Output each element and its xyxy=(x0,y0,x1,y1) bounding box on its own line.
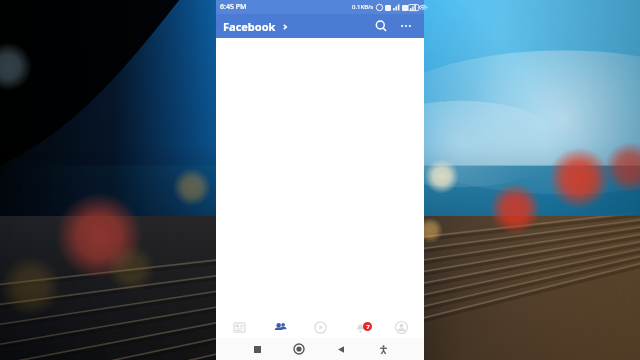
button[interactable]: Back xyxy=(326,338,356,360)
button[interactable]: Facebook xyxy=(223,17,289,36)
staticText: 7 xyxy=(366,323,370,331)
button[interactable]: Recents xyxy=(242,338,272,360)
staticText: 0.1KB/s xyxy=(352,3,374,11)
staticText: Facebook xyxy=(223,19,276,34)
button[interactable]: Notifications xyxy=(343,316,377,338)
button[interactable]: Accessibility xyxy=(368,338,398,360)
button[interactable]: Profile xyxy=(384,316,418,338)
staticText: 6:45 PM xyxy=(220,2,247,12)
button[interactable]: Search xyxy=(370,15,392,37)
button[interactable]: Friends xyxy=(263,316,297,338)
button[interactable]: News Feed xyxy=(222,316,256,338)
button[interactable]: Home xyxy=(284,338,314,360)
button[interactable]: Watch xyxy=(303,316,337,338)
button[interactable]: More options xyxy=(395,15,417,37)
